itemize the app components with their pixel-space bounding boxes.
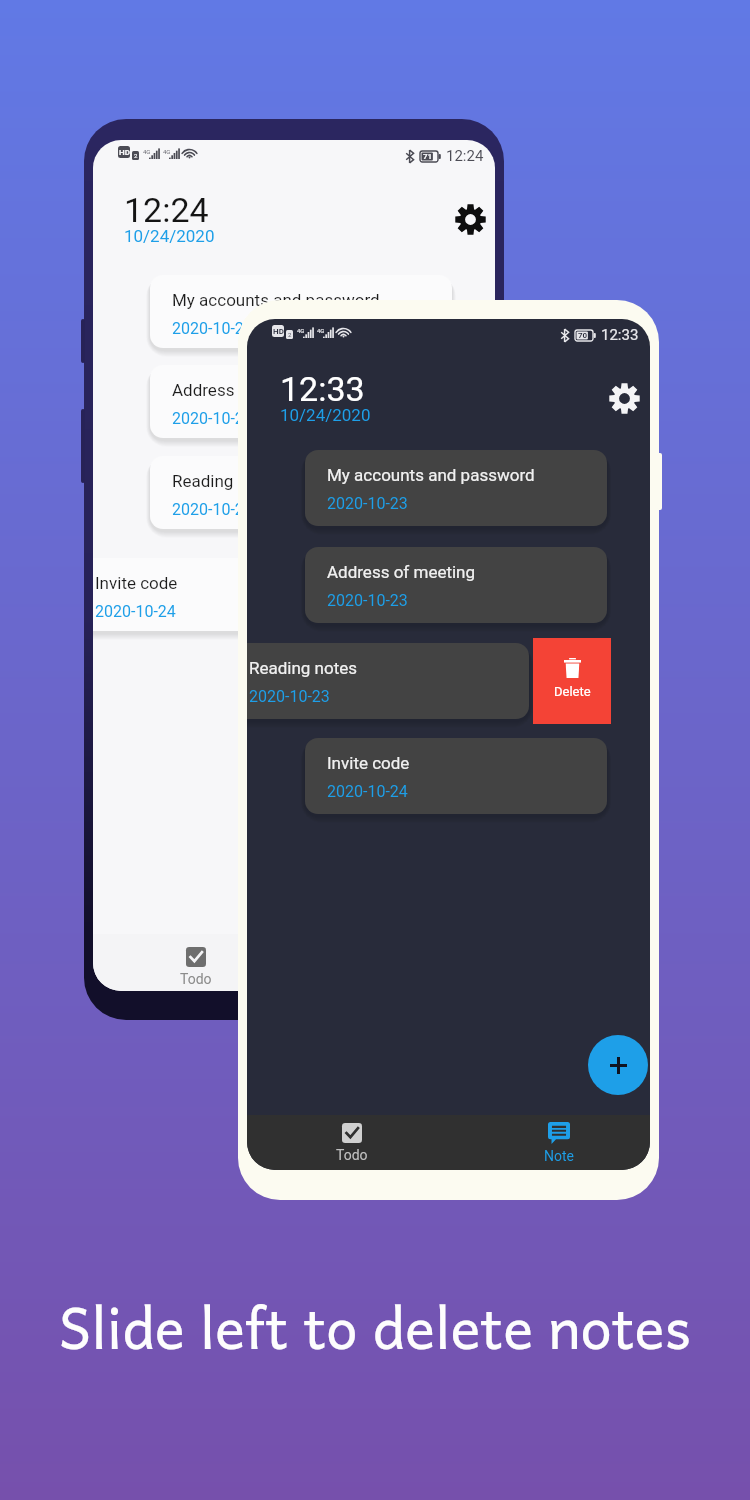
staticText: 10/24/2020	[124, 226, 215, 246]
staticText: 4G	[297, 327, 305, 334]
staticText: 12:24	[446, 147, 484, 165]
staticText: 4G	[143, 148, 151, 155]
staticText: 2020-10-24	[327, 782, 408, 801]
button[interactable]: Todo	[146, 934, 246, 991]
button[interactable]: My accounts and password	[150, 275, 452, 348]
staticText: HD	[273, 327, 284, 336]
staticText: 2020-10-23	[172, 500, 253, 519]
staticText: 2020-10-23	[249, 687, 330, 706]
button[interactable]: Invite code	[305, 738, 607, 814]
staticText: Invite code	[95, 573, 178, 593]
button[interactable]: Settings	[451, 200, 489, 238]
staticText: 4G	[163, 148, 171, 155]
button[interactable]: My accounts and password	[305, 450, 607, 526]
staticText: Reading notes	[249, 658, 358, 678]
staticText: 2020-10-24	[95, 602, 176, 621]
staticText: 12:24	[124, 190, 209, 230]
staticText: Slide left to delete notes	[0, 1281, 750, 1371]
staticText: Address of meeting	[172, 380, 321, 400]
staticText: 2020-10-23	[172, 319, 253, 338]
staticText: Note	[544, 1148, 574, 1164]
staticText: HD	[119, 148, 130, 157]
staticText: Invite code	[327, 753, 410, 773]
button[interactable]: Add note	[588, 1035, 648, 1095]
staticText: Todo	[180, 971, 212, 987]
staticText: 12:33	[601, 326, 639, 344]
button[interactable]: Reading notes	[150, 456, 452, 529]
staticText: 2	[288, 331, 292, 338]
button[interactable]: Address of meeting	[150, 365, 452, 438]
staticText: My accounts and password	[172, 290, 380, 310]
staticText: 2020-10-23	[327, 494, 408, 513]
staticText: Delete	[554, 684, 591, 699]
button[interactable]: Delete	[533, 638, 611, 724]
button[interactable]: Invite code	[93, 558, 375, 631]
button[interactable]: Note	[509, 1115, 609, 1170]
staticText: Address of meeting	[327, 562, 476, 582]
staticText: 2020-10-23	[172, 409, 253, 428]
staticText: 2020-10-23	[327, 591, 408, 610]
button[interactable]: Todo	[302, 1115, 402, 1170]
staticText: 12:33	[280, 369, 365, 409]
staticText: Reading notes	[172, 471, 281, 491]
staticText: 4G	[317, 327, 325, 334]
staticText: 2	[134, 152, 138, 159]
staticText: 70	[578, 331, 588, 340]
staticText: 10/24/2020	[280, 405, 371, 425]
staticText: My accounts and password	[327, 465, 535, 485]
button[interactable]: Settings	[605, 379, 643, 417]
staticText: Todo	[336, 1147, 368, 1163]
button[interactable]: Reading notes	[247, 643, 529, 719]
button[interactable]: Address of meeting	[305, 547, 607, 623]
staticText: 71	[423, 152, 433, 161]
